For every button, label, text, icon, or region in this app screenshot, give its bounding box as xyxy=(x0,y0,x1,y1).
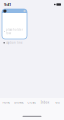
button[interactable]: Create xyxy=(26,98,38,107)
staticText: placeholder row xyxy=(6,28,23,35)
button[interactable]: Browse xyxy=(13,98,26,107)
staticText: 9:41 xyxy=(4,2,11,7)
staticText: Inbox xyxy=(41,101,49,104)
staticText: Create xyxy=(27,101,36,104)
button[interactable]: You xyxy=(51,98,64,107)
button[interactable]: Home xyxy=(0,98,13,107)
staticText: Home xyxy=(2,101,10,104)
staticText: caption line xyxy=(6,41,23,44)
staticText: You xyxy=(55,101,60,104)
staticText: Browse xyxy=(14,101,24,104)
button[interactable]: Inbox xyxy=(38,98,51,107)
